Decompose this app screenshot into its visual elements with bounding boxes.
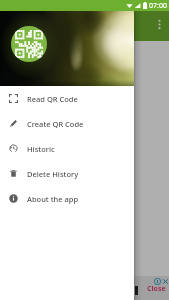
staticText: About the app [27,194,79,204]
button[interactable]: About the app [0,186,134,211]
button[interactable]: More options [151,16,167,32]
button[interactable]: Create QR Code [0,111,134,136]
button[interactable]: Read QR Code [0,86,134,111]
staticText: Create QR Code [27,119,84,129]
staticText: Delete History [27,169,79,179]
staticText: Read QR Code [27,94,78,104]
button[interactable]: Advertisement [0,276,169,300]
button[interactable]: Historic [0,136,134,161]
staticText: Close [147,284,166,294]
staticText: Historic [27,144,55,154]
staticText: 07:00 [149,1,167,11]
button[interactable]: Delete History [0,161,134,186]
